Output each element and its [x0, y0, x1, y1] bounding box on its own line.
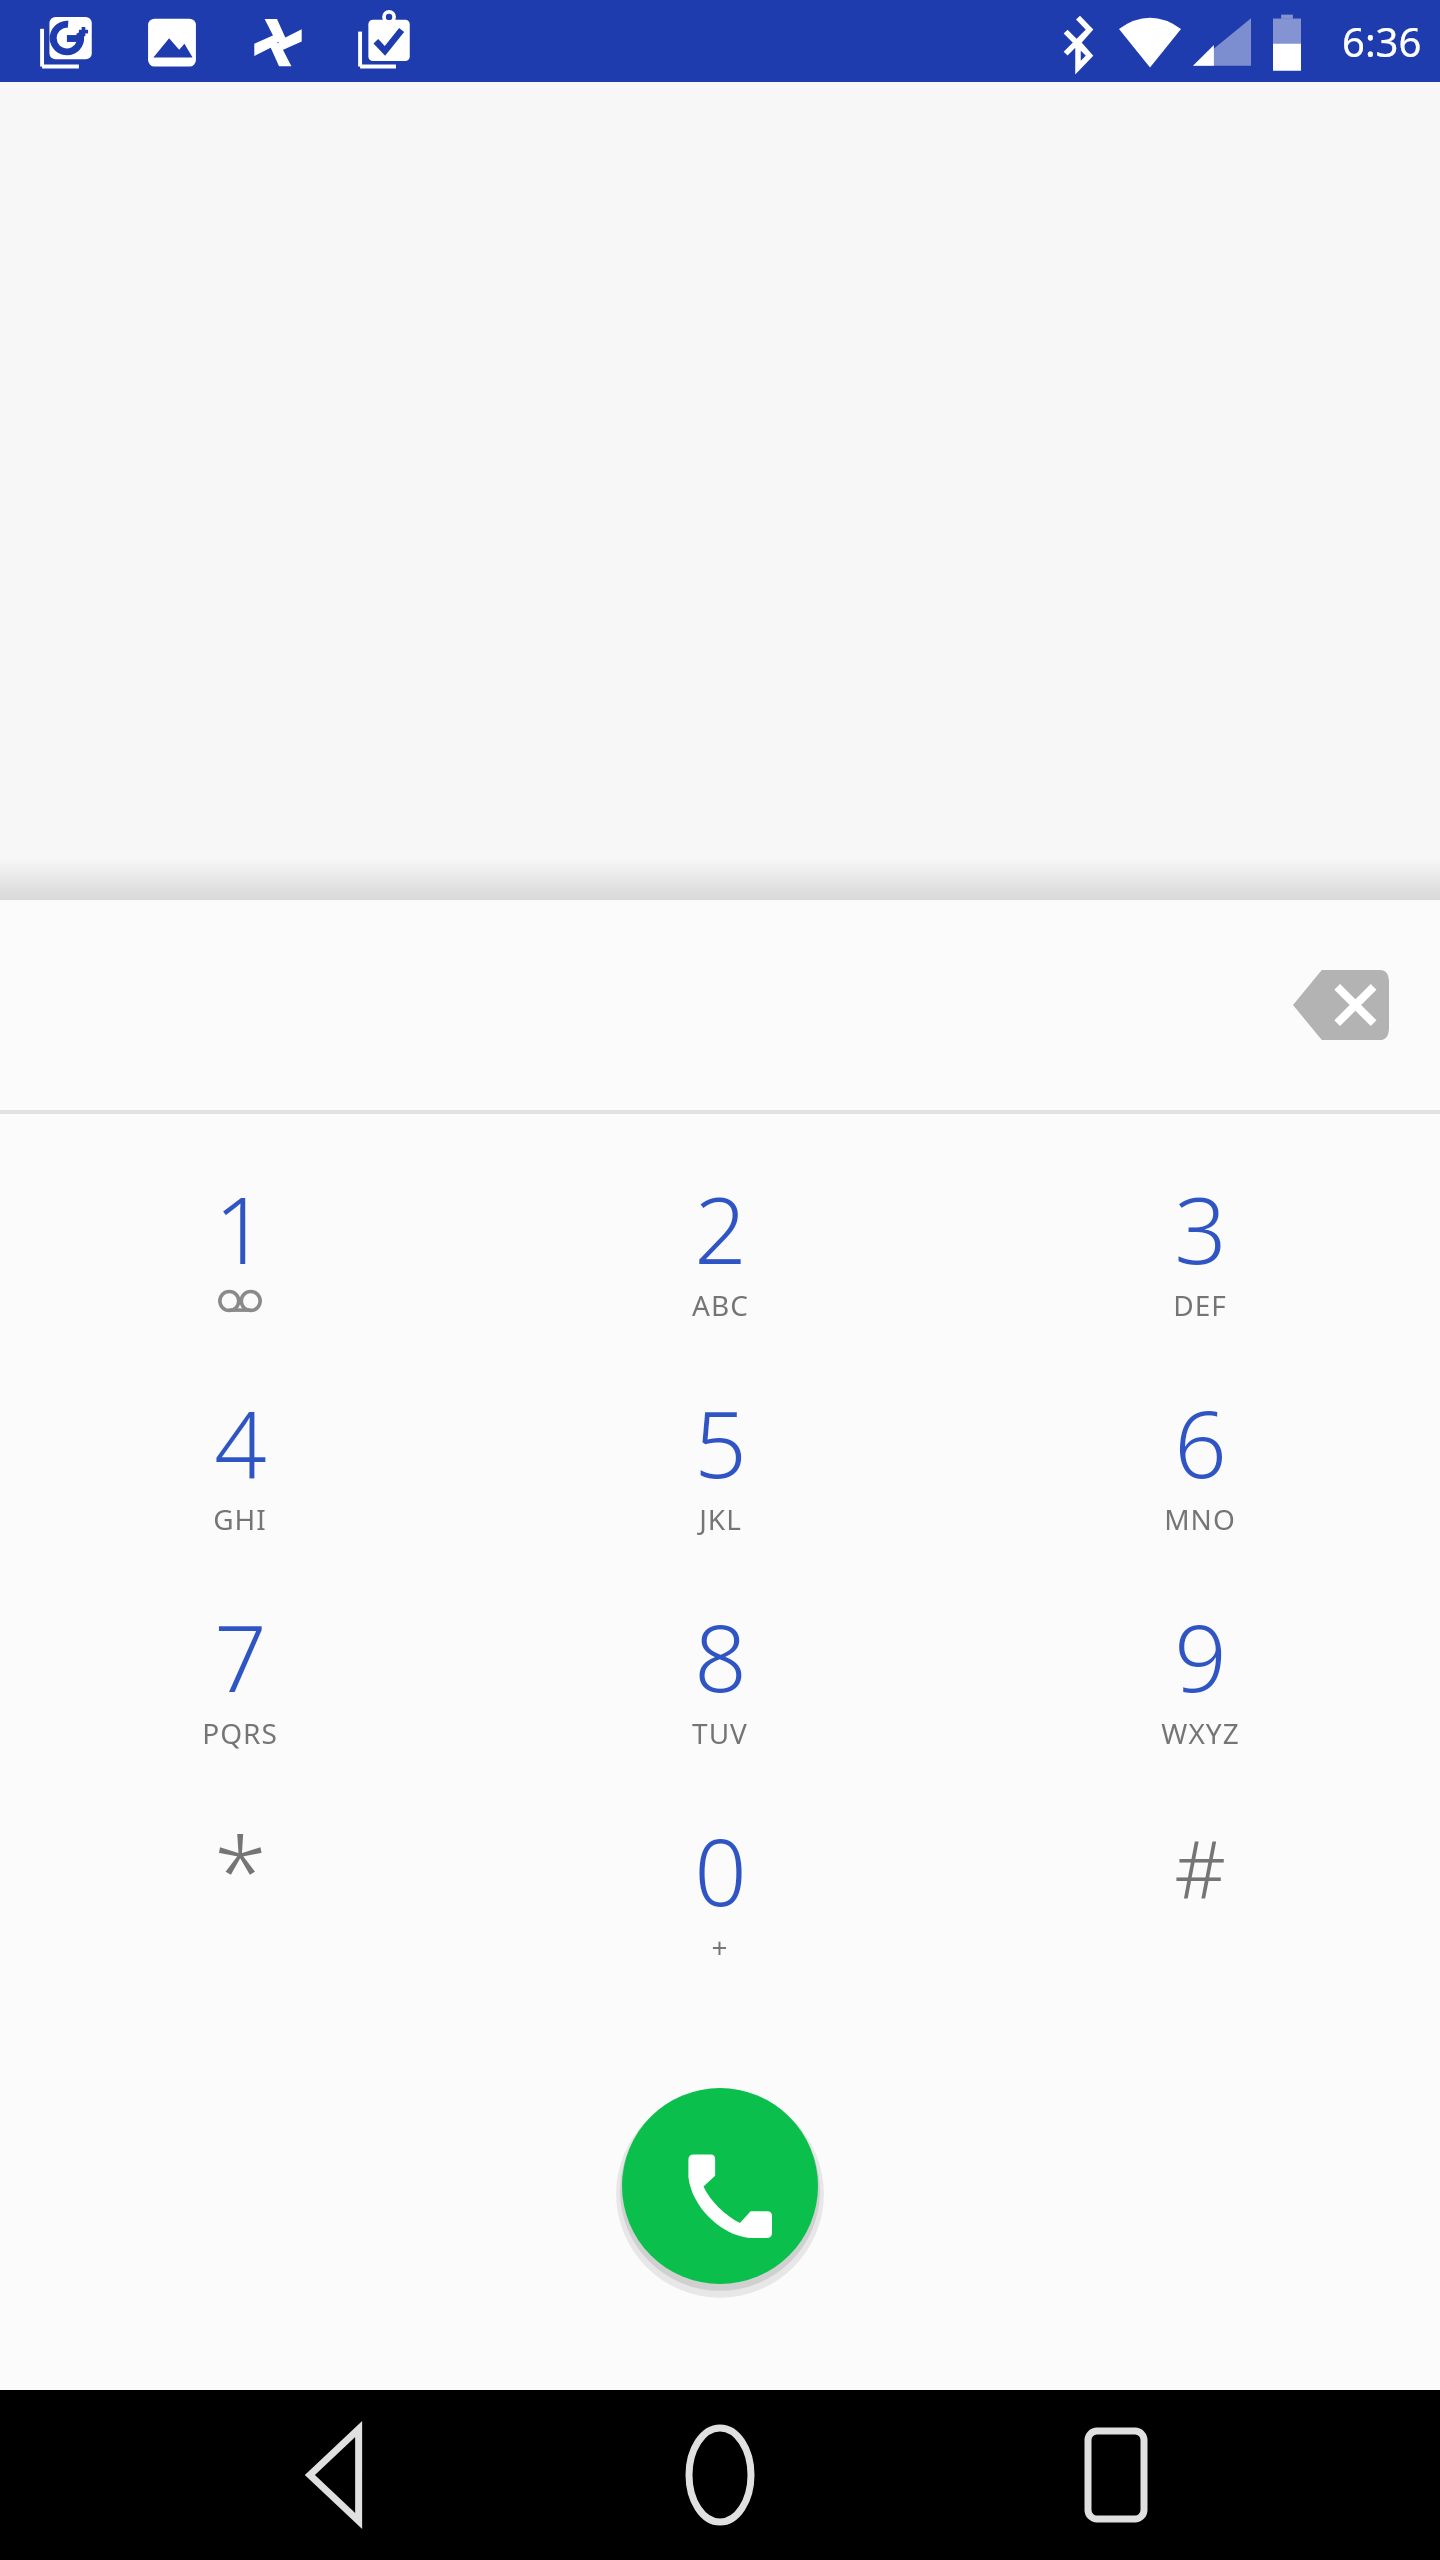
staticText: 3	[1174, 1166, 1227, 1286]
staticText: TUV	[692, 1714, 748, 1752]
button[interactable]: 2	[480, 1142, 960, 1356]
staticText: PQRS	[202, 1714, 278, 1752]
button[interactable]: Backspace	[1282, 953, 1400, 1057]
button[interactable]: 0	[480, 1784, 960, 1998]
staticText: 4	[214, 1380, 267, 1500]
staticText: 8	[694, 1594, 747, 1714]
staticText: 0	[694, 1808, 747, 1928]
staticText: 7	[214, 1594, 267, 1714]
button[interactable]: *	[0, 1784, 480, 1998]
button[interactable]: 4	[0, 1356, 480, 1570]
staticText: WXYZ	[1161, 1714, 1240, 1752]
staticText: MNO	[1164, 1500, 1236, 1538]
staticText: ABC	[692, 1286, 749, 1324]
button[interactable]: Call	[620, 2086, 820, 2286]
button[interactable]: 3	[960, 1142, 1440, 1356]
button[interactable]: 1	[0, 1142, 480, 1356]
staticText: JKL	[699, 1500, 742, 1538]
staticText: +	[711, 1928, 729, 1966]
staticText: *	[214, 1804, 267, 1924]
staticText: 2	[694, 1166, 747, 1286]
button[interactable]: 9	[960, 1570, 1440, 1784]
button[interactable]: 8	[480, 1570, 960, 1784]
button[interactable]: 7	[0, 1570, 480, 1784]
staticText: DEF	[1173, 1286, 1227, 1324]
button[interactable]: 6	[960, 1356, 1440, 1570]
staticText: 1	[214, 1166, 267, 1286]
staticText: GHI	[213, 1500, 267, 1538]
button[interactable]: Back	[0, 2390, 480, 2560]
staticText: 9	[1174, 1594, 1227, 1714]
staticText: 5	[694, 1380, 747, 1500]
staticText: #	[1174, 1812, 1226, 1921]
staticText: 6:36	[1342, 14, 1422, 68]
button[interactable]: #	[960, 1784, 1440, 1998]
button[interactable]: Recent apps	[960, 2390, 1440, 2560]
button[interactable]: 5	[480, 1356, 960, 1570]
button[interactable]: Home	[480, 2390, 960, 2560]
staticText: 6	[1174, 1380, 1227, 1500]
